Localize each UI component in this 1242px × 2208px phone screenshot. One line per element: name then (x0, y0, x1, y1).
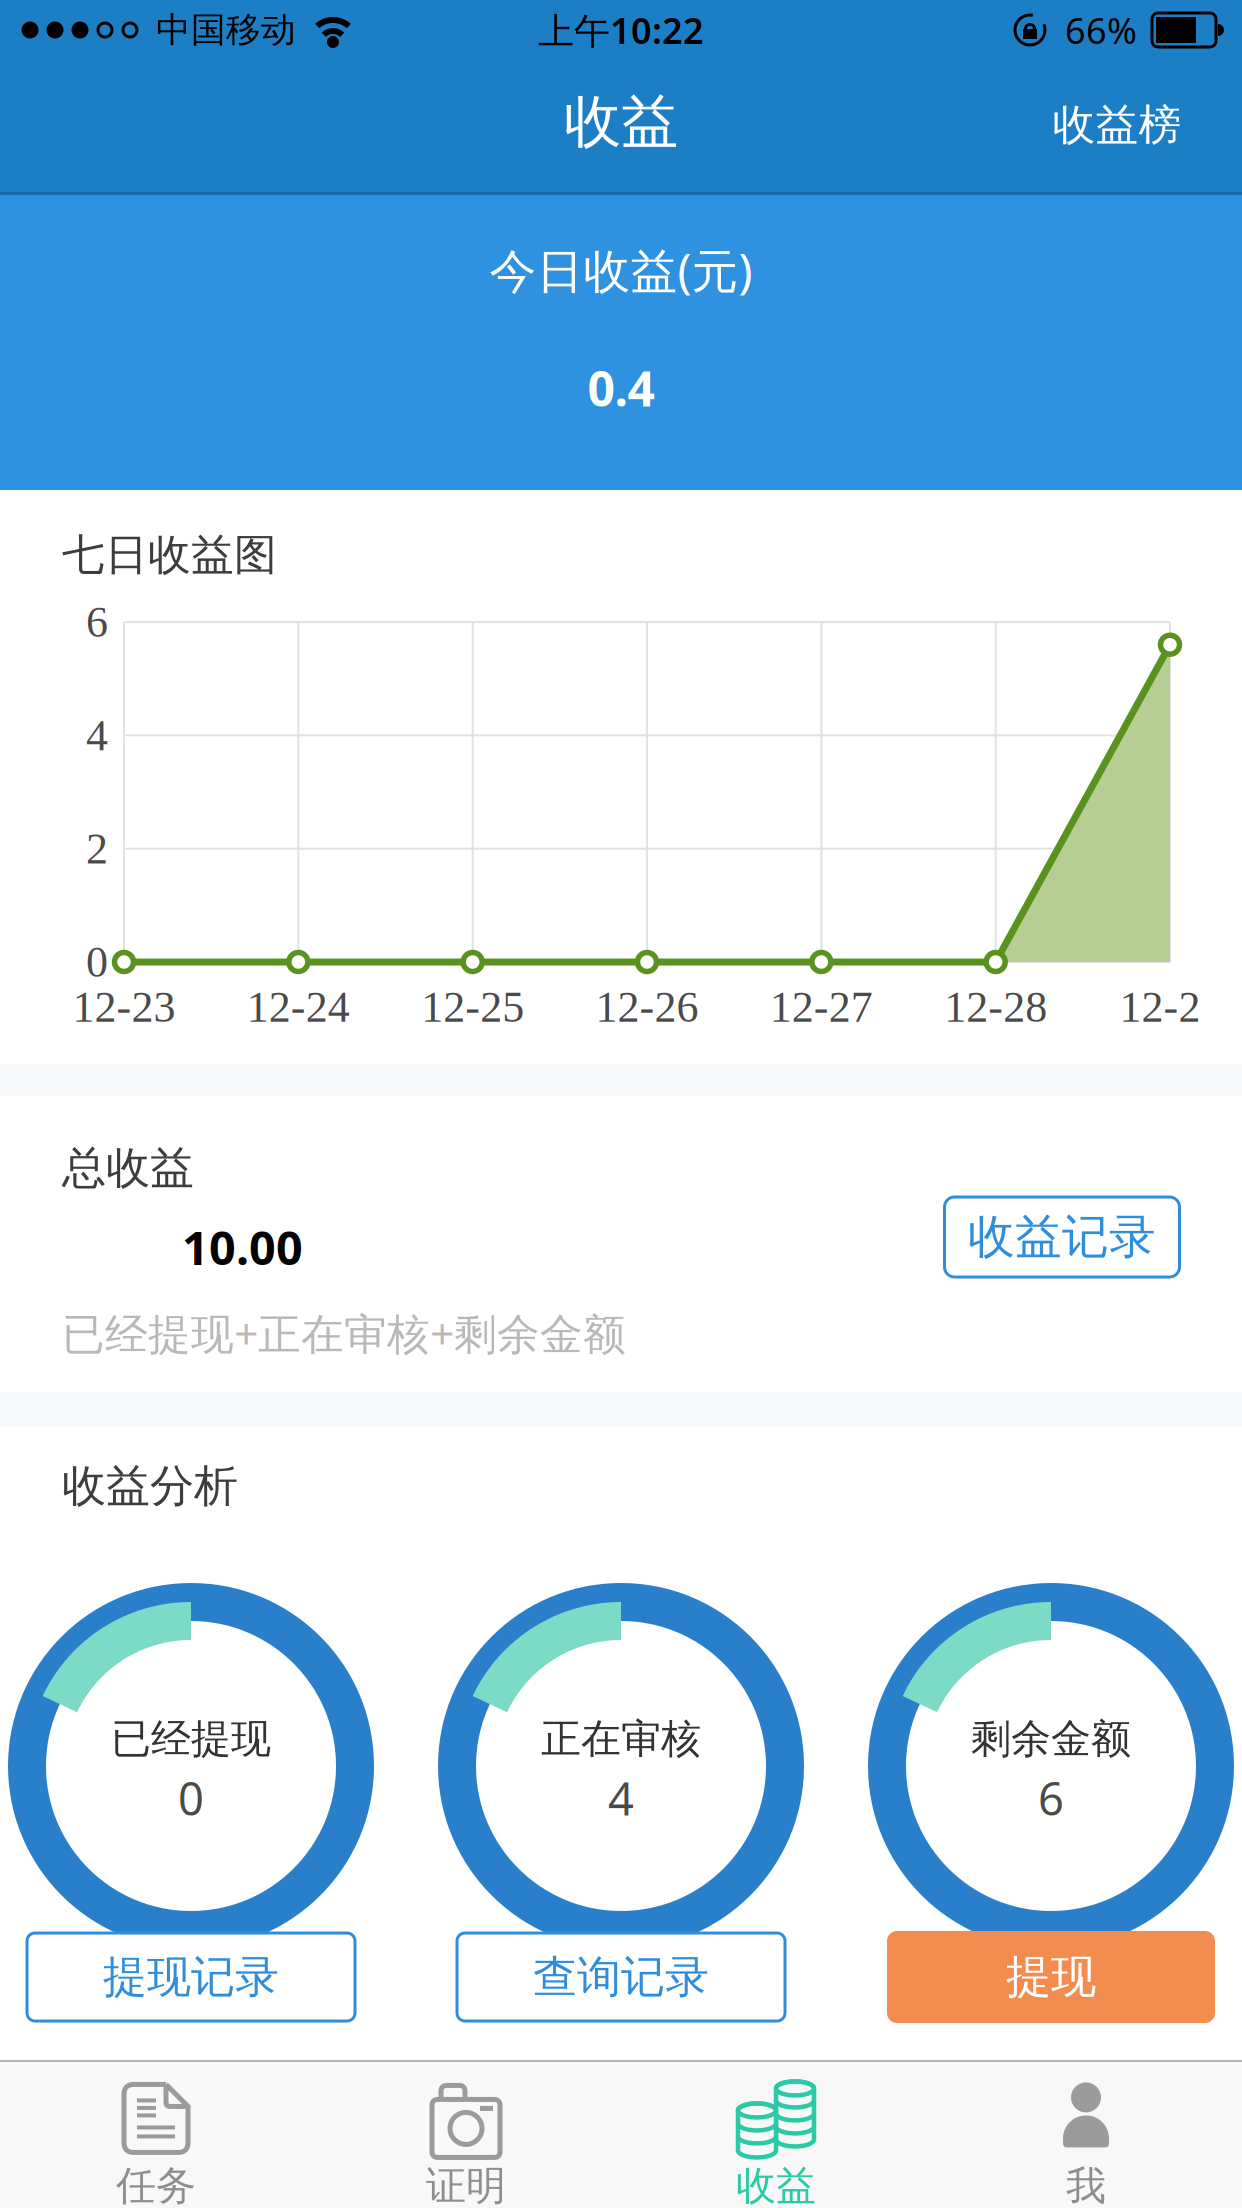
staticText: 6 (86, 598, 108, 646)
staticText: 4 (86, 711, 108, 760)
staticText: 12-24 (247, 983, 350, 1031)
staticText: 提现 (1006, 1949, 1096, 2005)
staticText: 总收益 (62, 1141, 194, 1195)
staticText: 收益榜 (1052, 99, 1181, 151)
staticText: 0 (86, 938, 108, 986)
staticText: 12-25 (421, 983, 524, 1031)
staticText: 我 (1066, 2161, 1106, 2208)
staticText: 10.00 (182, 1216, 303, 1278)
staticText: 6 (1038, 1768, 1064, 1828)
staticText: 收益记录 (968, 1208, 1156, 1266)
staticText: 今日收益(元) (489, 239, 752, 301)
button[interactable]: 提现记录 (27, 1933, 355, 2021)
button[interactable]: 任务 (1, 2062, 311, 2208)
staticText: 收益分析 (62, 1459, 238, 1513)
button[interactable]: 提现 (887, 1931, 1215, 2023)
staticText: 12-23 (72, 983, 175, 1031)
staticText: 66% (1065, 6, 1137, 54)
button[interactable]: 收益榜 (1052, 99, 1181, 151)
staticText: 2 (86, 824, 108, 873)
staticText: 收益 (564, 87, 678, 157)
button[interactable]: 证明 (311, 2062, 621, 2208)
staticText: 4 (608, 1768, 634, 1828)
staticText: 12-28 (944, 983, 1047, 1031)
staticText: 0 (178, 1768, 204, 1828)
staticText: 查询记录 (533, 1950, 709, 2004)
staticText: 剩余金额 (971, 1714, 1131, 1763)
staticText: 任务 (116, 2161, 196, 2208)
staticText: 七日收益图 (62, 529, 277, 581)
staticText: 正在审核 (541, 1714, 701, 1763)
staticText: 12-27 (770, 983, 873, 1031)
staticText: 收益 (736, 2161, 816, 2208)
staticText: 已经提现 (111, 1714, 271, 1763)
button[interactable]: 我 (931, 2062, 1241, 2208)
staticText: 提现记录 (103, 1950, 279, 2004)
staticText: 0.4 (587, 356, 654, 420)
staticText: 已经提现+正在审核+剩余金额 (62, 1305, 626, 1361)
button[interactable]: 收益记录 (944, 1197, 1179, 1277)
staticText: 上午10:22 (538, 6, 704, 54)
button[interactable]: 查询记录 (457, 1933, 785, 2021)
staticText: 12-26 (595, 983, 698, 1031)
button[interactable]: 收益 (621, 2062, 931, 2208)
staticText: 证明 (426, 2161, 506, 2208)
staticText: 12-2 (1119, 983, 1200, 1031)
staticText: 中国移动 (156, 9, 296, 51)
